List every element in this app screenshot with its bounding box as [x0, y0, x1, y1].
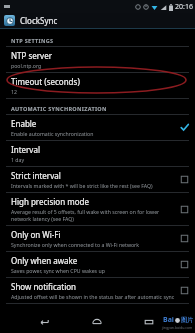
- button[interactable]: NTP server: [0, 47, 195, 73]
- staticText: Adjusted offset will be shown in the sta…: [11, 293, 175, 300]
- button[interactable]: Back: [36, 313, 54, 331]
- button[interactable]: Enable: [0, 115, 195, 141]
- button[interactable]: Only when awake: [0, 252, 195, 278]
- button[interactable]: Home: [88, 313, 106, 331]
- button[interactable]: Strict interval: [0, 167, 195, 193]
- staticText: Timeout (seconds): [11, 76, 80, 87]
- button[interactable]: ClockSync: [0, 13, 195, 28]
- staticText: 1 day: [11, 156, 25, 163]
- staticText: Enable: [11, 118, 37, 129]
- staticText: 12: [11, 88, 17, 95]
- staticText: Average result of 5 offsets, full wake w…: [11, 208, 176, 222]
- button[interactable]: Timeout (seconds): [0, 73, 195, 99]
- other: Only on Wi-Fi: [180, 234, 189, 243]
- staticText: jingyan.baidu.com: [162, 325, 193, 330]
- staticText: 图片: [181, 316, 193, 324]
- staticText: ClockSync: [20, 15, 58, 26]
- other: Enable: [180, 123, 189, 132]
- other: Only when awake: [180, 260, 189, 269]
- staticText: NTP server: [11, 50, 52, 61]
- staticText: pool.ntp.org: [11, 62, 42, 69]
- button[interactable]: Interval: [0, 141, 195, 167]
- staticText: Bai: [163, 315, 174, 325]
- other: High precision mode: [180, 205, 189, 214]
- staticText: Only when awake: [11, 255, 78, 266]
- staticText: Intervals marked with * will be strict l…: [11, 182, 153, 189]
- button[interactable]: Only on Wi-Fi: [0, 226, 195, 252]
- button[interactable]: High precision mode: [0, 193, 195, 226]
- staticText: NTP SETTINGS: [11, 37, 54, 44]
- staticText: Only on Wi-Fi: [11, 229, 61, 240]
- staticText: Show notification: [11, 281, 76, 292]
- staticText: High precision mode: [11, 196, 89, 207]
- button[interactable]: Show notification: [0, 278, 195, 304]
- staticText: Strict interval: [11, 170, 61, 181]
- button[interactable]: Recents: [140, 313, 158, 331]
- staticText: 20:16: [175, 2, 193, 12]
- staticText: Interval: [11, 144, 40, 155]
- staticText: Synchronize only when connected to a Wi-…: [11, 241, 140, 248]
- other: Show notification: [180, 286, 189, 295]
- staticText: AUTOMATIC SYNCHRONIZATION: [11, 105, 107, 112]
- other: Strict interval: [180, 175, 189, 184]
- staticText: Saves power, sync when CPU wakes up: [11, 267, 105, 274]
- staticText: Enable automatic synchronization: [11, 130, 94, 137]
